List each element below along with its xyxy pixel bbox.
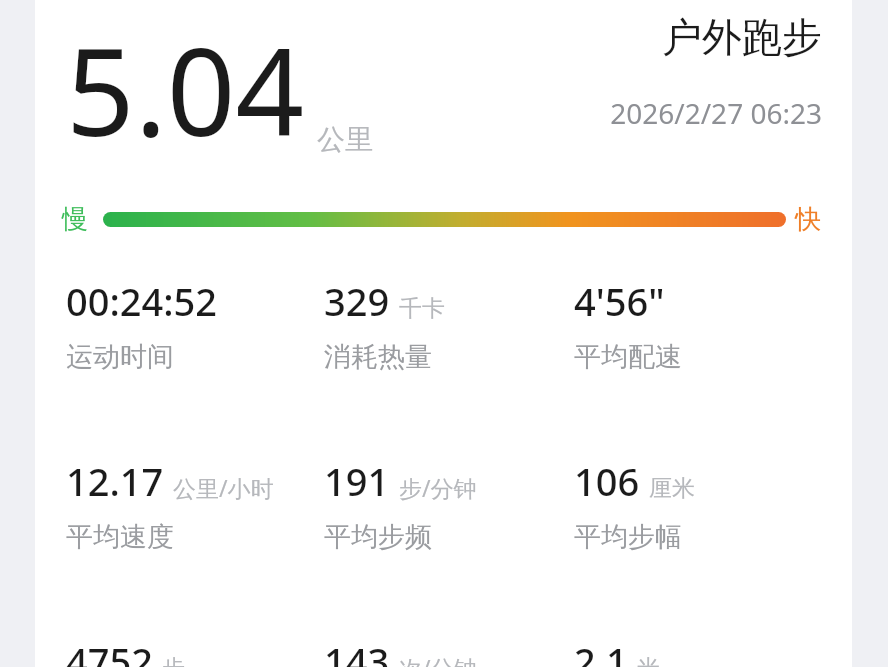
staticText: 米 [637,654,660,667]
staticText: 329 [324,275,390,327]
staticText: 191 [324,455,390,507]
staticText: 消耗热量 [324,340,432,374]
button[interactable]: 191 [324,455,477,554]
staticText: 4752 [66,635,153,667]
button[interactable]: 4752 [66,635,185,667]
button[interactable]: 户外跑步 [522,12,822,132]
staticText: 运动时间 [66,340,174,374]
staticText: 143 [324,635,390,667]
button[interactable]: 2.1 [574,635,660,667]
staticText: 00:24:52 [66,275,218,327]
staticText: 次/分钟 [399,652,477,667]
staticText: 平均步频 [324,520,432,554]
staticText: 2026/2/27 06:23 [610,94,822,132]
staticText: 厘米 [649,474,695,503]
staticText: 2.1 [574,635,628,667]
staticText: 步/分钟 [399,472,477,503]
button[interactable]: 12.17 [66,455,274,554]
staticText: 平均步幅 [574,520,682,554]
staticText: 12.17 [66,455,164,507]
staticText: 慢 [62,203,88,236]
button[interactable]: 4'56" [574,275,682,374]
staticText: 千卡 [399,294,445,323]
staticText: 平均速度 [66,520,174,554]
button[interactable]: 329 [324,275,445,374]
button[interactable]: 慢 [35,196,852,242]
staticText: 平均配速 [574,340,682,374]
staticText: 步 [162,654,185,667]
staticText: 4'56" [574,275,665,327]
staticText: 户外跑步 [662,12,822,62]
staticText: 快 [795,203,821,236]
button[interactable]: 106 [574,455,695,554]
staticText: 公里/小时 [173,472,274,503]
staticText: 5.04 [66,8,305,171]
staticText: 106 [574,455,640,507]
staticText: 公里 [317,122,373,157]
button[interactable]: 00:24:52 [66,275,218,374]
button[interactable]: 143 [324,635,477,667]
